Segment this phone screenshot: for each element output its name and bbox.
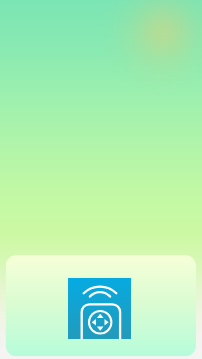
button[interactable]: Remote control app icon bbox=[0, 0, 202, 359]
